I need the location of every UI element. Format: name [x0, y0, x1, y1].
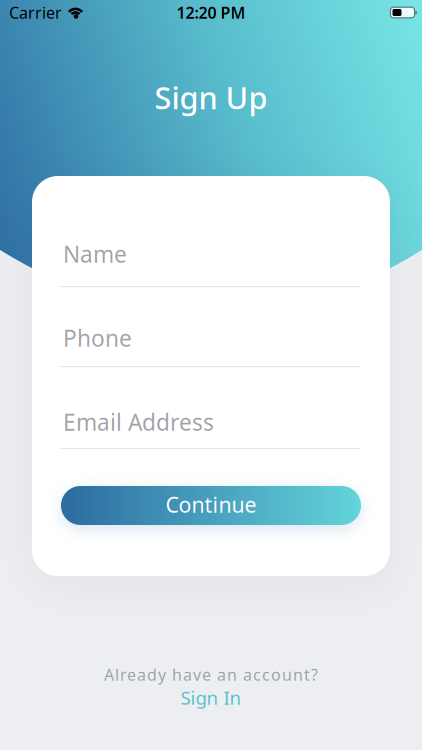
staticText: Carrier	[9, 2, 62, 23]
button[interactable]: Continue	[61, 486, 361, 525]
staticText: Already have an account?	[104, 664, 318, 685]
staticText: Phone	[63, 323, 132, 353]
button[interactable]: Already have an account?	[104, 664, 318, 685]
button[interactable]: Sign In	[180, 685, 241, 710]
staticText: Continue	[165, 490, 256, 519]
button[interactable]: Email Address	[32, 407, 390, 449]
staticText: Sign In	[180, 685, 241, 710]
staticText: Sign Up	[154, 77, 267, 118]
staticText: Name	[63, 239, 127, 269]
staticText: Email Address	[63, 407, 214, 437]
button[interactable]: Phone	[32, 323, 390, 367]
staticText: 12:20 PM	[176, 2, 245, 23]
button[interactable]: Name	[32, 239, 390, 287]
